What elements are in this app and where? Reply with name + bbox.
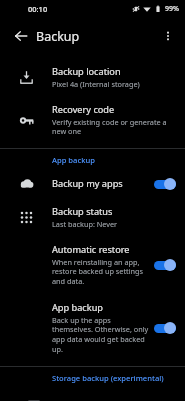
staticText: Storage backup (experimental)	[52, 373, 164, 383]
staticText: 99%	[165, 4, 179, 14]
staticText: Backup my apps	[52, 177, 123, 190]
other: Recovery code	[19, 113, 34, 128]
button[interactable]: Backup my files	[0, 387, 185, 401]
staticText: Backup status	[52, 205, 113, 218]
button[interactable]: Backup status	[0, 198, 185, 236]
other: Backup my apps	[19, 176, 34, 191]
button[interactable]: On	[153, 258, 177, 272]
staticText: 00:10	[28, 4, 48, 14]
button[interactable]: Recovery code	[0, 96, 185, 144]
other: Backup status	[19, 210, 34, 225]
staticText: Backup location	[52, 65, 121, 78]
staticText: App backup	[52, 301, 104, 314]
button[interactable]: Automatic restore	[0, 236, 185, 294]
staticText: Automatic restore	[52, 243, 130, 256]
other: Backup location	[19, 70, 34, 85]
button[interactable]: On	[153, 177, 177, 191]
button[interactable]: Back	[6, 21, 36, 51]
button[interactable]: Backup my apps	[0, 169, 185, 198]
button[interactable]: App backup	[0, 294, 185, 362]
staticText: When reinstalling an app, restore backed…	[52, 257, 149, 287]
staticText: Recovery code	[52, 103, 115, 116]
staticText: Last backup: Never	[52, 219, 118, 229]
staticText: Pixel 4a (Internal storage)	[52, 79, 140, 89]
staticText: Verify existing code or generate a new o…	[52, 117, 173, 137]
button[interactable]: On	[153, 321, 177, 335]
button[interactable]: More options	[154, 22, 182, 50]
staticText: Backup	[36, 28, 80, 45]
staticText: Back up the apps themselves. Otherwise, …	[52, 315, 149, 355]
staticText: App backup	[52, 155, 95, 165]
button[interactable]: Backup location	[0, 58, 185, 96]
